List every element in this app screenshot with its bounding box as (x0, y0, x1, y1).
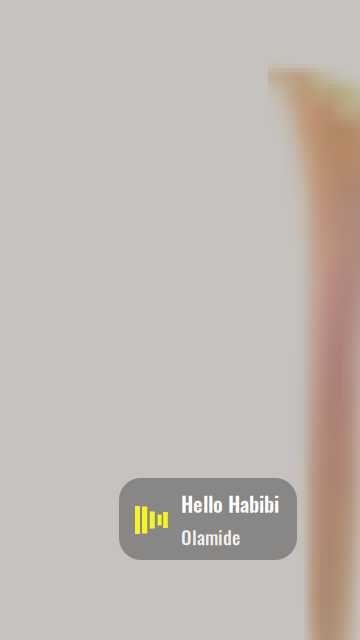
staticText: Hello Habibi (181, 488, 279, 519)
button[interactable]: Hello Habibi (119, 478, 297, 560)
staticText: Olamide (181, 523, 240, 551)
